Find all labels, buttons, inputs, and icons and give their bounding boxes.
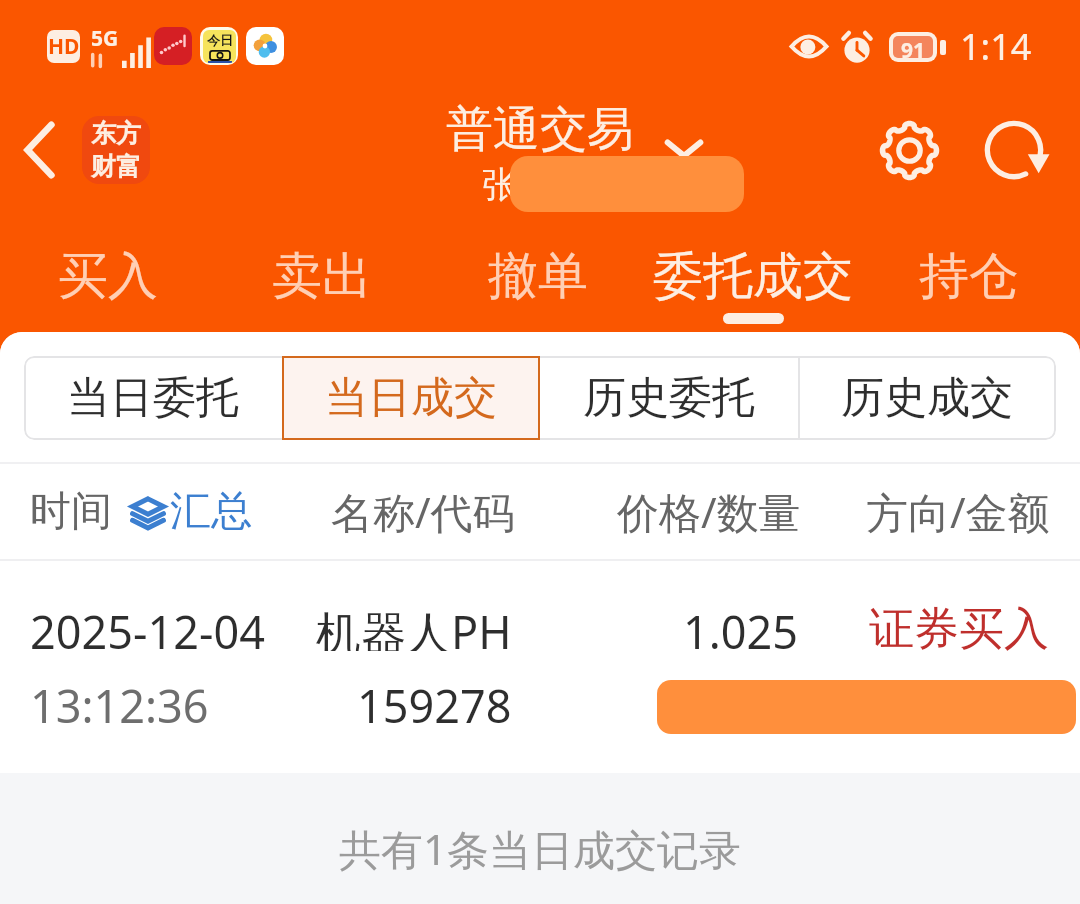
button[interactable]: 当日成交: [282, 356, 540, 440]
button[interactable]: 时间: [30, 486, 252, 538]
staticText: 委托成交: [653, 245, 853, 308]
staticText: 91: [901, 36, 926, 58]
button[interactable]: Back: [0, 102, 164, 198]
staticText: 历史委托: [583, 371, 755, 425]
button[interactable]: 撤单: [476, 230, 600, 332]
button[interactable]: 历史委托: [540, 356, 798, 440]
button[interactable]: 普通交易: [446, 100, 703, 159]
staticText: 汇总: [170, 486, 252, 538]
button[interactable]: 历史成交: [798, 356, 1056, 440]
button[interactable]: 2025-12-04: [0, 561, 1080, 773]
staticText: 持仓: [919, 245, 1019, 308]
staticText: 当日委托: [67, 371, 239, 425]
staticText: 价格/数量: [617, 483, 801, 540]
staticText: 13:12:36: [30, 675, 209, 736]
staticText: 东方: [91, 118, 141, 149]
button[interactable]: 当日委托: [24, 356, 282, 440]
staticText: 时间: [30, 486, 112, 538]
staticText: 2025-12-04: [30, 601, 265, 662]
staticText: 普通交易: [446, 100, 634, 159]
staticText: 历史成交: [841, 371, 1013, 425]
staticText: 卖出: [272, 245, 372, 308]
staticText: 今日: [207, 32, 233, 48]
staticText: 张: [482, 162, 518, 207]
button[interactable]: 买入: [46, 230, 170, 332]
staticText: 名称/代码: [331, 483, 515, 540]
staticText: 共有1条当日成交记录: [339, 820, 742, 877]
staticText: 证券买入: [869, 601, 1049, 651]
staticText: 撤单: [488, 245, 588, 308]
staticText: 1.025: [683, 601, 799, 651]
staticText: 买入: [58, 245, 158, 308]
button[interactable]: 持仓: [907, 230, 1031, 332]
staticText: 机器人PH: [316, 601, 512, 651]
staticText: 159278: [357, 675, 512, 725]
button[interactable]: Settings: [861, 102, 957, 198]
staticText: 财富: [91, 151, 141, 182]
button[interactable]: 卖出: [260, 230, 384, 332]
staticText: 5G: [91, 24, 119, 53]
button[interactable]: 委托成交: [643, 230, 863, 332]
button[interactable]: Refresh: [966, 102, 1062, 198]
staticText: 当日成交: [325, 371, 497, 425]
staticText: 方向/金额: [866, 483, 1050, 540]
staticText: 1:14: [960, 22, 1032, 71]
staticText: HD: [48, 32, 80, 61]
